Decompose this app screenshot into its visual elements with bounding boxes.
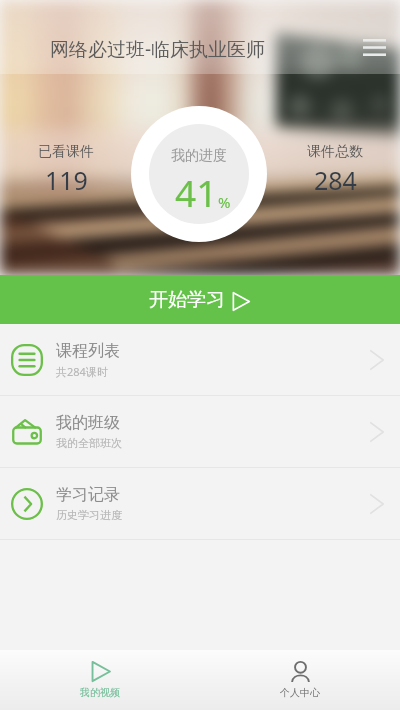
staticText: 已看课件 xyxy=(38,143,94,161)
staticText: 我的进度 xyxy=(171,147,227,165)
staticText: 课件总数 xyxy=(307,143,363,161)
staticText: 历史学习进度 xyxy=(56,508,122,522)
staticText: 个人中心 xyxy=(280,686,320,699)
staticText: 开始学习 xyxy=(149,288,225,312)
staticText: % xyxy=(218,192,231,212)
button[interactable]: 学习记录 xyxy=(0,468,400,539)
staticText: 284 xyxy=(314,163,357,197)
button[interactable]: Menu xyxy=(353,26,396,69)
button[interactable]: 课程列表 xyxy=(0,324,400,395)
staticText: 学习记录 xyxy=(56,485,120,505)
staticText: 课程列表 xyxy=(56,341,120,361)
button[interactable]: 我的班级 xyxy=(0,396,400,467)
staticText: 我的班级 xyxy=(56,413,120,433)
staticText: 共284课时 xyxy=(56,364,108,379)
staticText: 我的视频 xyxy=(80,686,120,699)
button[interactable]: 个人中心 xyxy=(200,650,400,710)
staticText: 网络必过班-临床执业医师 xyxy=(50,36,266,62)
button[interactable]: 我的视频 xyxy=(0,650,200,710)
button[interactable]: 开始学习 xyxy=(0,275,400,324)
staticText: 119 xyxy=(45,163,88,197)
staticText: 我的全部班次 xyxy=(56,436,122,450)
staticText: 41 xyxy=(175,167,218,217)
